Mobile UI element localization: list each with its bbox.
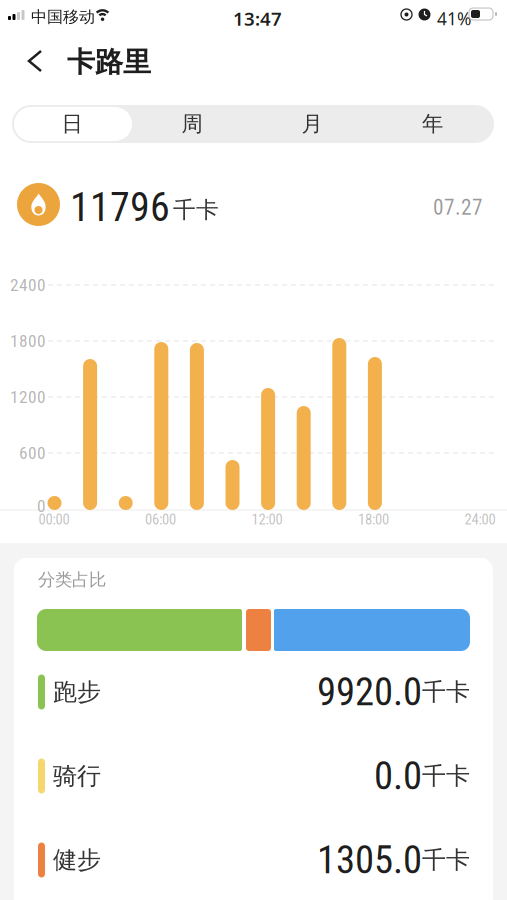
staticText: 健步 (53, 845, 101, 875)
staticText: 9920.0 (317, 669, 422, 715)
staticText: 13:47 (233, 6, 282, 31)
button[interactable]: 周 (132, 105, 252, 143)
staticText: 1200 (10, 387, 46, 407)
staticText: 卡路里 (67, 45, 151, 79)
button[interactable]: 年 (372, 105, 493, 143)
staticText: 00:00 (38, 511, 69, 528)
staticText: 周 (181, 111, 202, 137)
staticText: 年 (422, 111, 443, 137)
staticText: 跑步 (53, 677, 101, 707)
staticText: 分类占比 (38, 569, 106, 590)
staticText: 千卡 (173, 196, 219, 224)
staticText: 千卡 (422, 845, 470, 875)
staticText: 07.27 (433, 195, 483, 220)
staticText: 0 (37, 496, 46, 516)
staticText: 600 (19, 443, 46, 463)
button[interactable]: 骑行 (38, 758, 470, 794)
staticText: 12:00 (251, 511, 282, 528)
staticText: 0.0 (374, 753, 422, 799)
staticText: 1305.0 (317, 837, 422, 883)
button[interactable]: Back (19, 41, 51, 81)
staticText: 18:00 (358, 511, 389, 528)
staticText: 月 (301, 111, 322, 137)
button[interactable]: 月 (252, 105, 372, 143)
staticText: 日 (61, 111, 82, 137)
staticText: 41% (437, 7, 471, 30)
button[interactable]: 跑步 (38, 674, 470, 710)
staticText: 中国移动 (31, 7, 95, 27)
staticText: 06:00 (145, 511, 176, 528)
staticText: 骑行 (53, 761, 101, 791)
staticText: 2400 (10, 275, 46, 295)
button[interactable]: 健步 (38, 842, 470, 878)
staticText: 1800 (10, 331, 46, 351)
staticText: 千卡 (422, 677, 470, 707)
staticText: 24:00 (464, 511, 495, 528)
button[interactable]: 日 (12, 105, 132, 143)
staticText: 千卡 (422, 761, 470, 791)
staticText: 11796 (70, 184, 170, 231)
